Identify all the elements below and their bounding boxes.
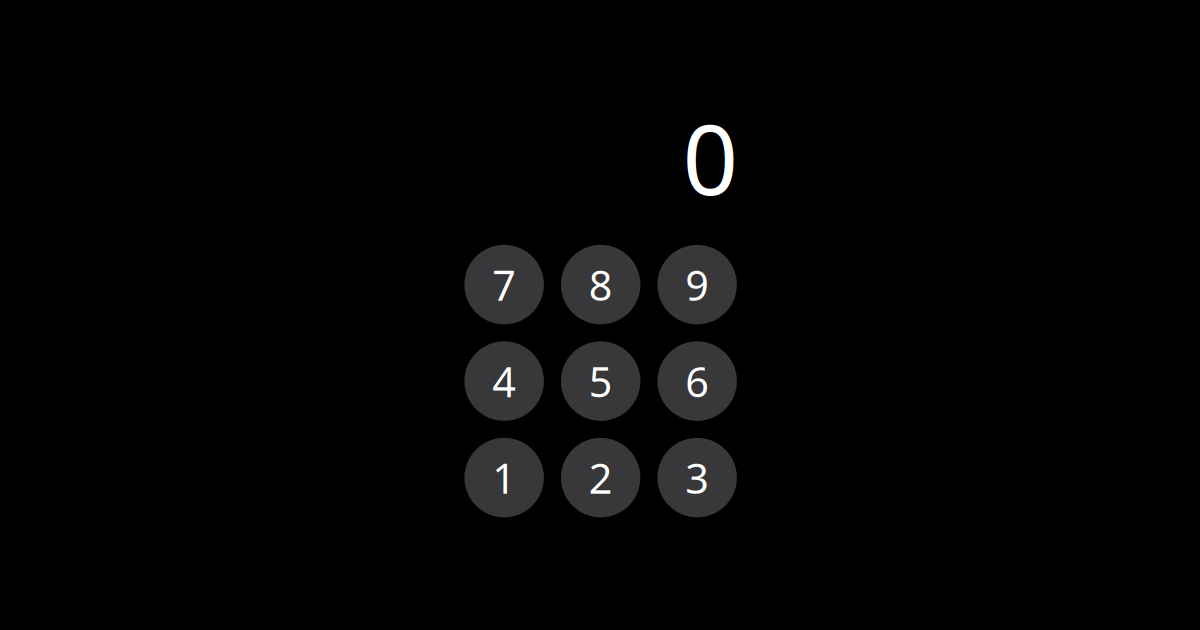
button[interactable]: 7 [464,245,544,324]
staticText: 1 [492,450,516,505]
staticText: 8 [589,257,613,312]
button[interactable]: 8 [561,245,640,324]
button[interactable]: 4 [464,341,544,421]
staticText: 4 [492,354,516,409]
staticText: 9 [685,257,709,312]
staticText: 0 [682,93,738,222]
button[interactable]: 1 [464,438,544,517]
button[interactable]: 9 [657,245,737,324]
button[interactable]: 5 [561,341,640,421]
button[interactable]: 2 [561,438,640,517]
staticText: 5 [589,354,613,409]
staticText: 6 [685,354,709,409]
staticText: 2 [589,450,613,505]
staticText: 3 [685,450,709,505]
button[interactable]: 3 [657,438,737,517]
button[interactable]: 6 [657,341,737,421]
staticText: 7 [492,257,516,312]
